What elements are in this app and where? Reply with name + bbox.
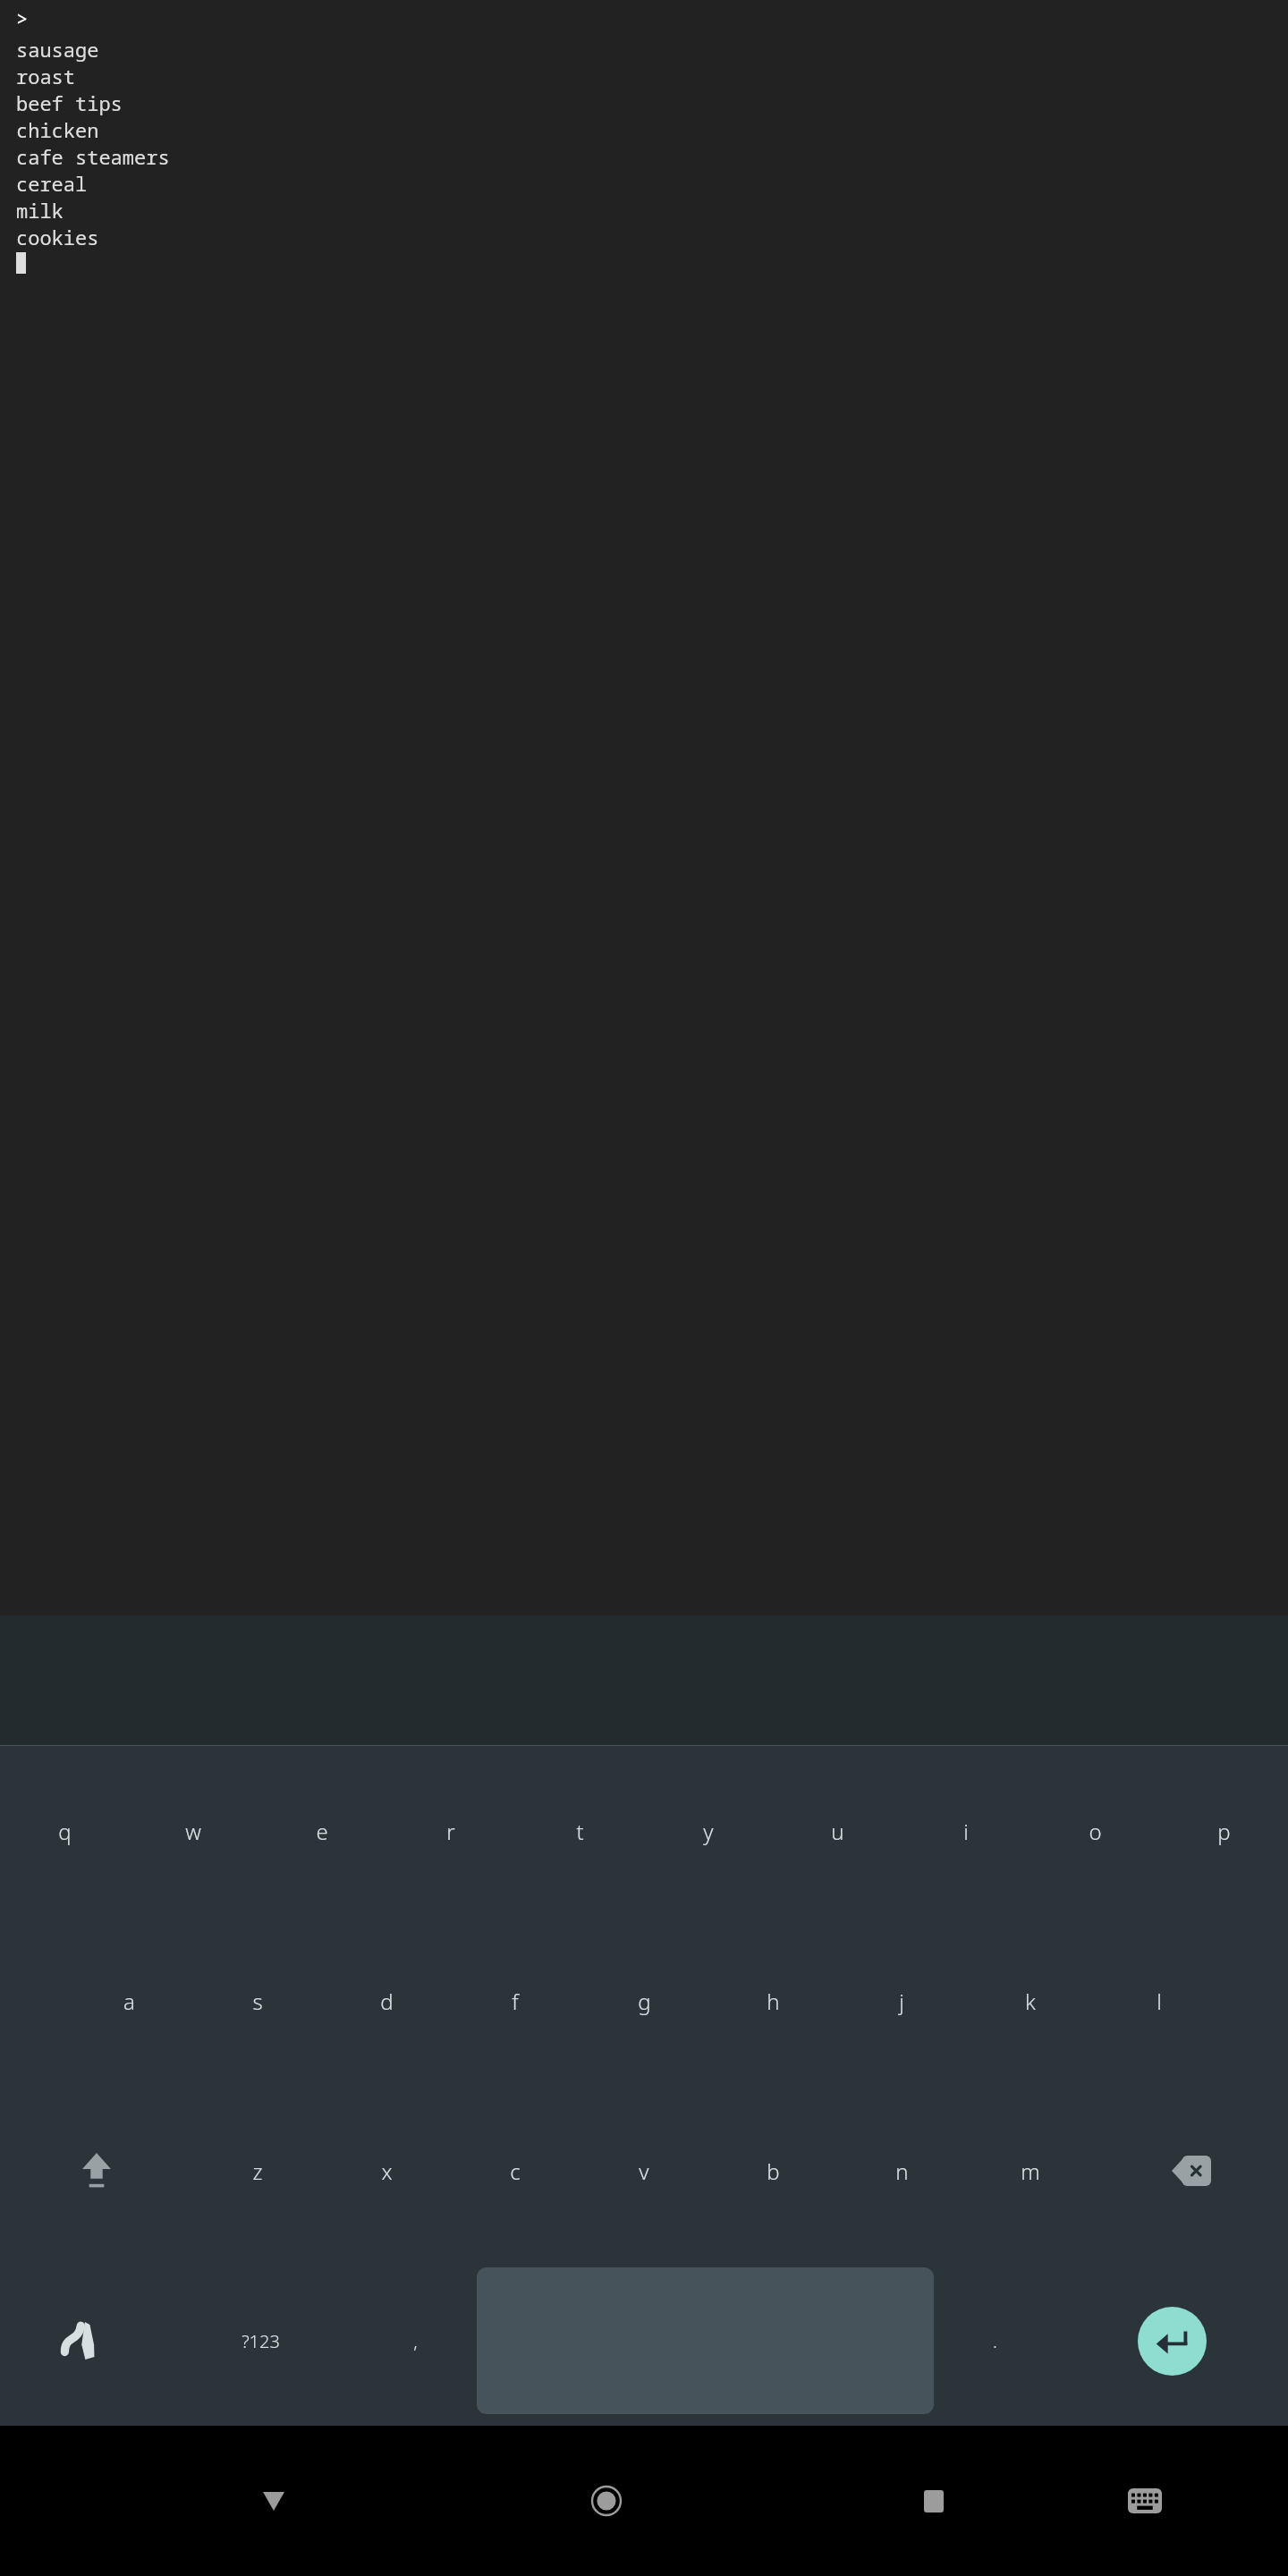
staticText: , (413, 2329, 418, 2353)
staticText: k (1025, 1987, 1036, 2016)
staticText: t (576, 1817, 584, 1846)
staticText: i (963, 1817, 969, 1846)
staticText: n (895, 2157, 909, 2186)
button[interactable]: n (837, 2086, 966, 2256)
staticText: s (252, 1987, 263, 2016)
staticText: beef tips (16, 89, 123, 116)
button[interactable]: l (1095, 1916, 1224, 2086)
button[interactable]: f (451, 1916, 580, 2086)
button[interactable]: s (193, 1916, 322, 2086)
staticText: p (1217, 1817, 1231, 1846)
button[interactable]: Switch keyboard (1039, 2426, 1250, 2576)
staticText: o (1089, 1817, 1102, 1846)
button[interactable]: > (0, 0, 1288, 1615)
button[interactable]: v (580, 2086, 708, 2256)
button[interactable]: w (129, 1746, 258, 1916)
button[interactable]: Enter (1138, 2307, 1207, 2376)
staticText: milk (16, 197, 64, 224)
staticText: ?123 (241, 2329, 280, 2353)
staticText: c (510, 2157, 521, 2186)
staticText: cereal (16, 170, 88, 197)
staticText: v (639, 2157, 649, 2186)
button[interactable]: e (258, 1746, 386, 1916)
button[interactable]: t (515, 1746, 644, 1916)
button[interactable]: Hide keyboard (168, 2426, 378, 2576)
button[interactable]: h (708, 1916, 837, 2086)
staticText: w (185, 1817, 201, 1846)
staticText: j (899, 1987, 904, 2016)
staticText: roast (16, 63, 76, 89)
staticText: z (252, 2157, 263, 2186)
button[interactable]: p (1159, 1746, 1288, 1916)
staticText: d (380, 1987, 394, 2016)
staticText: a (123, 1987, 135, 2016)
button[interactable]: Home (501, 2426, 712, 2576)
staticText: x (381, 2157, 393, 2186)
staticText: e (316, 1817, 328, 1846)
button[interactable]: y (644, 1746, 773, 1916)
button[interactable]: m (966, 2086, 1095, 2256)
staticText: . (993, 2329, 997, 2353)
button[interactable]: j (837, 1916, 966, 2086)
staticText: chicken (16, 116, 99, 143)
staticText: q (58, 1817, 72, 1846)
button[interactable]: Recents (828, 2426, 1039, 2576)
button[interactable]: Shift (0, 2086, 193, 2256)
staticText: sausage (16, 36, 99, 63)
button[interactable]: d (322, 1916, 451, 2086)
staticText: h (767, 1987, 780, 2016)
button[interactable]: z (193, 2086, 322, 2256)
button[interactable]: o (1030, 1746, 1159, 1916)
staticText: cookies (16, 224, 99, 250)
button[interactable]: i (902, 1746, 1030, 1916)
button[interactable]: r (386, 1746, 515, 1916)
staticText: u (831, 1817, 844, 1846)
button[interactable]: a (64, 1916, 193, 2086)
staticText: y (703, 1817, 714, 1846)
button[interactable]: k (966, 1916, 1095, 2086)
button[interactable]: Backspace (1095, 2086, 1288, 2256)
staticText: g (638, 1987, 651, 2016)
staticText: > (16, 4, 29, 31)
button[interactable]: ?123 (167, 2256, 354, 2426)
button[interactable]: x (322, 2086, 451, 2256)
button[interactable]: g (580, 1916, 708, 2086)
button[interactable]: u (773, 1746, 902, 1916)
staticText: r (446, 1817, 455, 1846)
button[interactable]: q (0, 1746, 129, 1916)
staticText: b (767, 2157, 780, 2186)
staticText: f (512, 1987, 519, 2016)
staticText: m (1021, 2157, 1040, 2186)
button[interactable]: Glide typing (0, 2256, 167, 2426)
staticText: l (1157, 1987, 1162, 2016)
staticText: cafe steamers (16, 143, 170, 170)
button[interactable]: c (451, 2086, 580, 2256)
button[interactable]: b (708, 2086, 837, 2256)
